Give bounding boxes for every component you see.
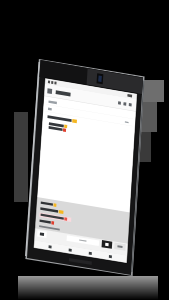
button[interactable]: Tablet showing Compose email screen — [0, 0, 169, 300]
